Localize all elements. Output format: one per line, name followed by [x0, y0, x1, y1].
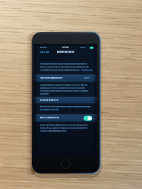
button[interactable]	[34, 97, 97, 104]
button[interactable]: Optimaal batterijladen aan/uit	[84, 116, 93, 121]
button[interactable]	[34, 74, 97, 81]
button[interactable]: Terug	[40, 51, 51, 57]
button[interactable]	[34, 114, 97, 121]
